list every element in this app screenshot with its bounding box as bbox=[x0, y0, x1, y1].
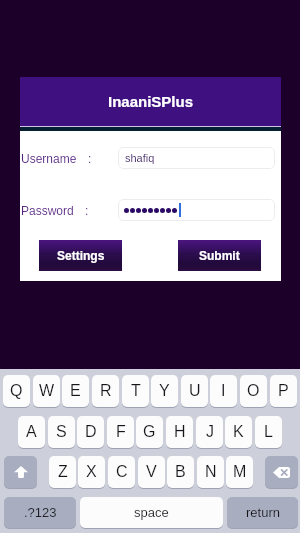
staticText: G bbox=[143, 423, 156, 441]
staticText: Y bbox=[159, 382, 170, 400]
staticText: X bbox=[86, 463, 97, 481]
button[interactable]: O bbox=[240, 375, 267, 407]
staticText: W bbox=[39, 382, 55, 400]
button[interactable]: X bbox=[78, 456, 105, 488]
button[interactable]: return bbox=[227, 497, 298, 528]
button[interactable]: B bbox=[167, 456, 194, 488]
button[interactable]: L bbox=[255, 416, 282, 448]
button[interactable]: C bbox=[108, 456, 135, 488]
button[interactable]: Settings bbox=[39, 240, 122, 271]
button[interactable]: H bbox=[166, 416, 193, 448]
staticText: A bbox=[26, 423, 37, 441]
staticText: .?123 bbox=[24, 505, 57, 520]
staticText: Password bbox=[21, 204, 74, 217]
button[interactable]: Backspace bbox=[265, 456, 298, 488]
button[interactable]: shafiq bbox=[118, 147, 275, 169]
staticText: S bbox=[56, 423, 67, 441]
staticText: F bbox=[116, 423, 126, 441]
button[interactable]: S bbox=[48, 416, 75, 448]
button[interactable]: T bbox=[122, 375, 149, 407]
button[interactable]: K bbox=[225, 416, 252, 448]
staticText: T bbox=[131, 382, 141, 400]
staticText: O bbox=[247, 382, 260, 400]
button[interactable]: G bbox=[136, 416, 163, 448]
button[interactable]: R bbox=[92, 375, 119, 407]
staticText: L bbox=[264, 423, 273, 441]
staticText: Submit bbox=[199, 249, 240, 262]
button[interactable]: Z bbox=[49, 456, 76, 488]
staticText: C bbox=[116, 463, 128, 481]
button[interactable]: P bbox=[270, 375, 297, 407]
staticText: H bbox=[174, 423, 186, 441]
button[interactable]: V bbox=[138, 456, 165, 488]
staticText: space bbox=[134, 505, 169, 520]
staticText: shafiq bbox=[125, 152, 155, 164]
staticText: : bbox=[85, 204, 89, 217]
staticText: N bbox=[205, 463, 217, 481]
staticText: Z bbox=[58, 463, 68, 481]
staticText: Settings bbox=[57, 249, 105, 262]
button[interactable]: U bbox=[181, 375, 208, 407]
button[interactable]: W bbox=[33, 375, 60, 407]
button[interactable]: N bbox=[197, 456, 224, 488]
button[interactable]: Shift bbox=[4, 456, 37, 488]
button[interactable] bbox=[118, 199, 275, 221]
staticText: Username bbox=[21, 152, 77, 165]
button[interactable]: E bbox=[62, 375, 89, 407]
button[interactable]: D bbox=[77, 416, 104, 448]
button[interactable]: M bbox=[226, 456, 253, 488]
button[interactable]: .?123 bbox=[4, 497, 76, 528]
button[interactable]: Submit bbox=[178, 240, 261, 271]
staticText: InaaniSPlus bbox=[108, 93, 194, 110]
staticText: M bbox=[233, 463, 247, 481]
staticText: V bbox=[146, 463, 157, 481]
button[interactable]: space bbox=[80, 497, 223, 528]
button[interactable]: A bbox=[18, 416, 45, 448]
staticText: D bbox=[85, 423, 97, 441]
button[interactable]: J bbox=[196, 416, 223, 448]
staticText: I bbox=[221, 382, 226, 400]
staticText: P bbox=[278, 382, 289, 400]
staticText: Q bbox=[10, 382, 23, 400]
button[interactable]: Q bbox=[3, 375, 30, 407]
staticText: return bbox=[246, 505, 280, 520]
button[interactable]: I bbox=[210, 375, 237, 407]
staticText: K bbox=[233, 423, 244, 441]
staticText: R bbox=[100, 382, 112, 400]
button[interactable]: Y bbox=[151, 375, 178, 407]
staticText: U bbox=[189, 382, 201, 400]
staticText: E bbox=[70, 382, 81, 400]
button[interactable]: F bbox=[107, 416, 134, 448]
staticText: : bbox=[88, 152, 92, 165]
staticText: J bbox=[206, 423, 214, 441]
staticText: B bbox=[175, 463, 186, 481]
